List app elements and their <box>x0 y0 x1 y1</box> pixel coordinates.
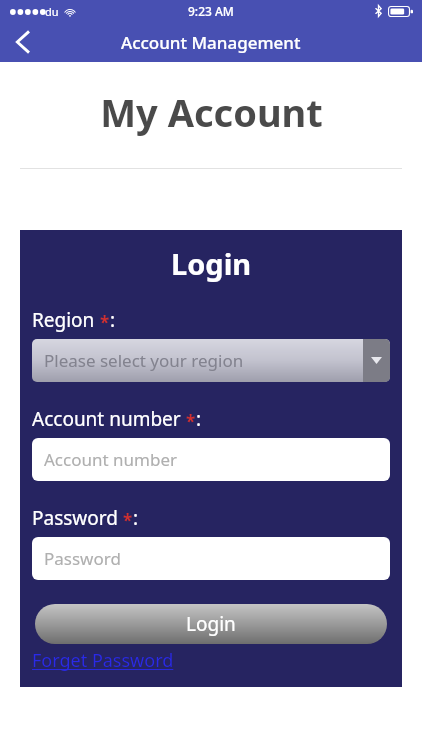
button[interactable]: Password <box>32 537 390 580</box>
staticText: Login <box>171 244 252 283</box>
staticText: Region <box>32 307 95 333</box>
staticText: : <box>196 406 202 432</box>
staticText: : <box>110 307 116 333</box>
button[interactable]: Account number <box>32 438 390 481</box>
staticText: * <box>186 410 196 433</box>
staticText: du <box>45 4 59 19</box>
button[interactable]: Please select your region <box>32 339 390 382</box>
staticText: Account number <box>32 406 181 432</box>
staticText: Password <box>32 505 118 531</box>
staticText: * <box>100 311 110 334</box>
staticText: 9:23 AM <box>188 3 234 19</box>
staticText: Password <box>44 547 121 570</box>
button[interactable]: Back <box>0 22 44 62</box>
button[interactable]: Login <box>35 604 387 644</box>
staticText: * <box>123 509 133 532</box>
staticText: : <box>133 505 139 531</box>
button[interactable]: Forget Password <box>32 648 174 673</box>
staticText: Account Management <box>121 31 301 54</box>
staticText: Please select your region <box>44 349 363 372</box>
staticText: Account number <box>44 448 178 471</box>
staticText: My Account <box>100 86 323 138</box>
staticText: Login <box>186 611 236 637</box>
